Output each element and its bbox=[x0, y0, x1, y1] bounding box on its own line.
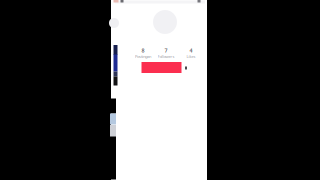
button[interactable]: 7 bbox=[157, 47, 174, 59]
staticText: Postingan bbox=[135, 54, 151, 59]
staticText: 7 bbox=[164, 47, 167, 54]
button[interactable]: 4 bbox=[186, 47, 195, 59]
staticText: 8 bbox=[141, 47, 144, 54]
button[interactable]: More options bbox=[185, 66, 187, 69]
staticText: 4 bbox=[189, 47, 192, 54]
button[interactable]: 8 bbox=[135, 47, 151, 59]
staticText: Followers bbox=[157, 54, 174, 59]
staticText: Likes bbox=[186, 54, 195, 59]
button[interactable] bbox=[141, 62, 181, 73]
